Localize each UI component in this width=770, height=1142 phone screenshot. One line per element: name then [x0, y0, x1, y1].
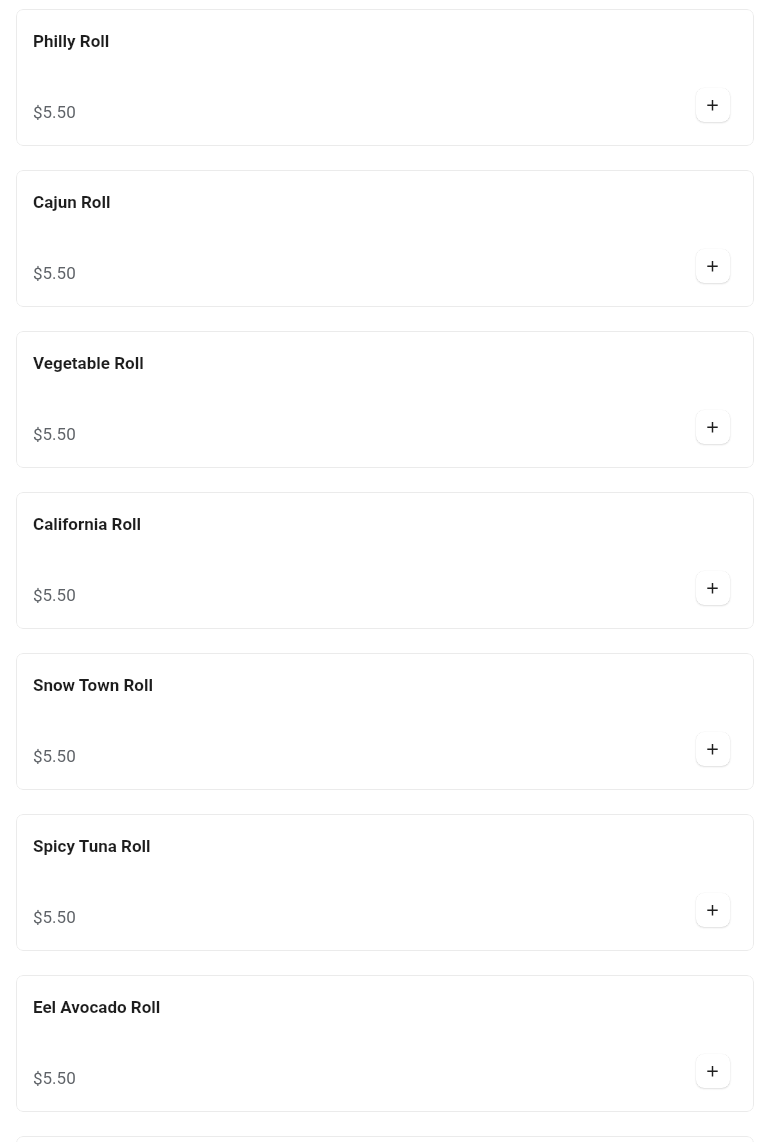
button[interactable]: Add Vegetable Roll — [696, 410, 730, 444]
button[interactable]: Rainbow Roll — [16, 1136, 754, 1142]
button[interactable]: Philly Roll — [16, 9, 754, 146]
button[interactable]: California Roll — [16, 492, 754, 629]
button[interactable]: Cajun Roll — [16, 170, 754, 307]
button[interactable]: Add Spicy Tuna Roll — [696, 893, 730, 927]
staticText: $5.50 — [33, 424, 76, 444]
button[interactable]: Add Cajun Roll — [696, 249, 730, 283]
button[interactable]: Add California Roll — [696, 571, 730, 605]
button[interactable]: Eel Avocado Roll — [16, 975, 754, 1112]
staticText: $5.50 — [33, 585, 76, 605]
staticText: $5.50 — [33, 1068, 76, 1088]
staticText: California Roll — [33, 514, 142, 534]
button[interactable]: Spicy Tuna Roll — [16, 814, 754, 951]
button[interactable]: Add Philly Roll — [696, 88, 730, 122]
button[interactable]: Add Snow Town Roll — [696, 732, 730, 766]
button[interactable]: Snow Town Roll — [16, 653, 754, 790]
staticText: Vegetable Roll — [33, 353, 144, 373]
staticText: Spicy Tuna Roll — [33, 836, 151, 856]
staticText: Snow Town Roll — [33, 675, 153, 695]
staticText: Cajun Roll — [33, 192, 111, 212]
button[interactable]: Vegetable Roll — [16, 331, 754, 468]
staticText: $5.50 — [33, 907, 76, 927]
staticText: $5.50 — [33, 746, 76, 766]
staticText: Philly Roll — [33, 31, 110, 51]
button[interactable]: Add Eel Avocado Roll — [696, 1054, 730, 1088]
staticText: $5.50 — [33, 102, 76, 122]
staticText: Eel Avocado Roll — [33, 997, 161, 1017]
staticText: $5.50 — [33, 263, 76, 283]
